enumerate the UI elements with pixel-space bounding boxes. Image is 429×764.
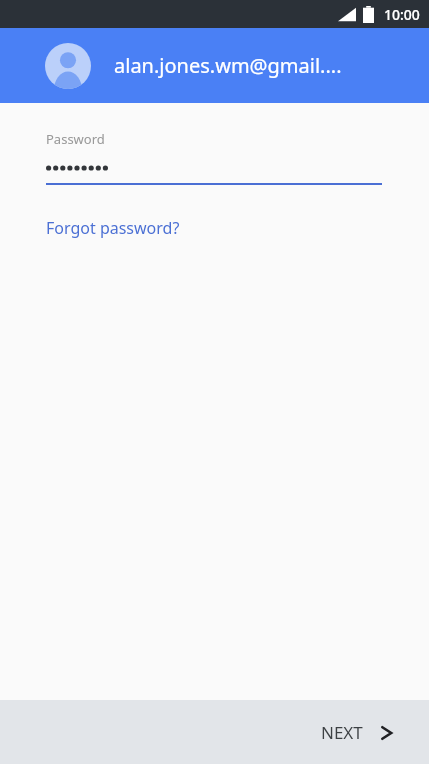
- button[interactable]: alan.jones.wm@gmail....: [0, 28, 429, 103]
- staticText: alan.jones.wm@gmail....: [114, 52, 342, 79]
- staticText: Forgot password?: [46, 217, 180, 239]
- button[interactable]: Forgot password?: [0, 213, 192, 243]
- staticText: NEXT: [321, 721, 363, 744]
- button[interactable]: NEXT: [297, 709, 429, 756]
- staticText: 10:00: [384, 5, 420, 24]
- other: Next: [380, 724, 393, 742]
- staticText: Password: [46, 130, 105, 148]
